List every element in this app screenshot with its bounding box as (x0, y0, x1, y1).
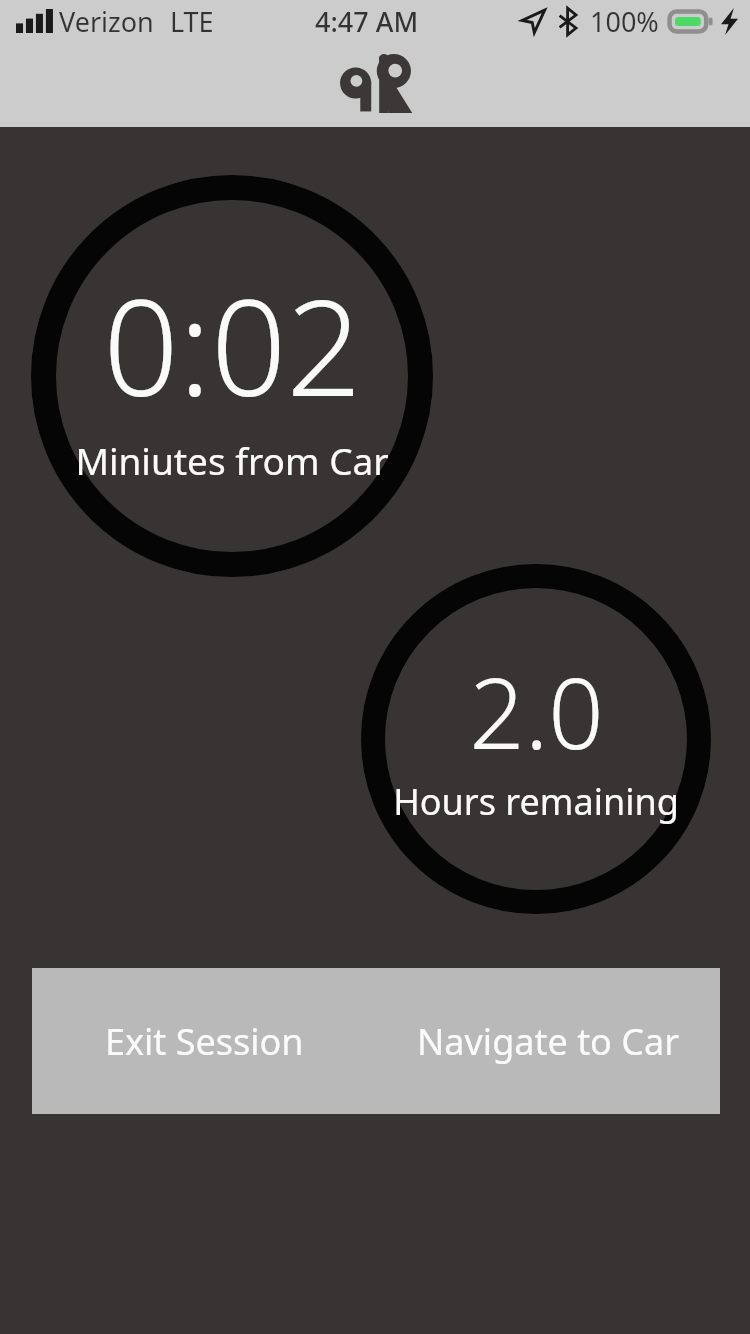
button[interactable]: Navigate to Car (376, 968, 720, 1114)
staticText: 0:02 (103, 255, 362, 435)
staticText: 4:47 AM (315, 3, 419, 40)
staticText: LTE (170, 3, 214, 40)
staticText: Hours remaining (393, 777, 679, 826)
staticText: Miniutes from Car (75, 435, 389, 485)
staticText: 100% (590, 3, 659, 40)
other: App logo (337, 53, 413, 113)
button[interactable]: Exit Session (32, 968, 376, 1114)
other: Minutes from car: 0:02 (31, 175, 433, 577)
staticText: Exit Session (105, 1017, 304, 1066)
staticText: 2.0 (469, 645, 604, 777)
staticText: Verizon (59, 3, 154, 40)
other: Hours remaining: 2.0 (361, 564, 711, 914)
staticText: Navigate to Car (417, 1017, 680, 1066)
